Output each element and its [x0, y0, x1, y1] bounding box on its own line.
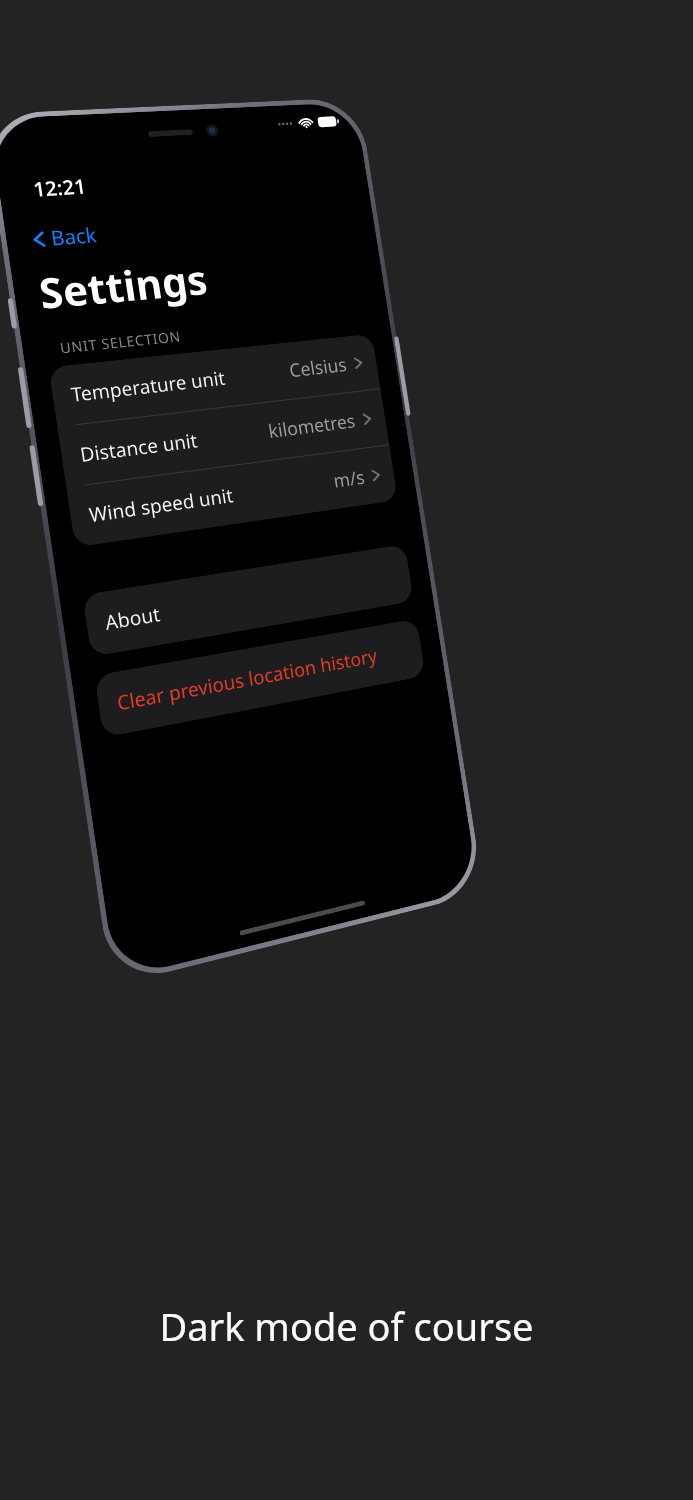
staticText: UNIT SELECTION: [59, 326, 182, 358]
staticText: Wind speed unit: [87, 482, 236, 528]
staticText: Temperature unit: [69, 365, 227, 408]
button[interactable]: Wind speed unit: [66, 445, 398, 547]
button[interactable]: Distance unit: [57, 389, 389, 488]
staticText: Distance unit: [78, 427, 200, 468]
staticText: kilometres: [266, 408, 357, 444]
button[interactable]: About: [82, 544, 414, 657]
staticText: Clear previous location history: [115, 643, 379, 717]
staticText: Settings: [35, 251, 212, 321]
staticText: Dark mode of course: [159, 1300, 534, 1352]
staticText: Celsius: [287, 352, 349, 383]
button[interactable]: Clear previous location history: [94, 618, 426, 738]
staticText: About: [103, 601, 162, 636]
button[interactable]: Back: [25, 218, 105, 256]
staticText: m/s: [332, 464, 366, 493]
staticText: 12:21: [31, 172, 88, 203]
staticText: Back: [49, 221, 99, 252]
button[interactable]: Temperature unit: [48, 334, 381, 427]
